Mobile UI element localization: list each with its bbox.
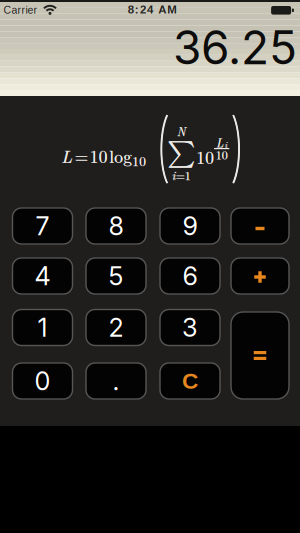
staticText: 10 (216, 146, 228, 163)
staticText: =1 (176, 167, 191, 184)
staticText: 10 (90, 143, 108, 168)
staticText: 7 (35, 211, 49, 241)
button[interactable]: C (160, 363, 220, 399)
button[interactable]: 4 (12, 258, 72, 294)
staticText: log (109, 143, 132, 168)
staticText: L (216, 134, 224, 151)
staticText: 8 (108, 211, 123, 241)
staticText: 10 (132, 151, 146, 170)
staticText: 10 (132, 151, 146, 170)
staticText: i (172, 167, 176, 184)
staticText: L (61, 143, 72, 168)
staticText: L (216, 134, 224, 151)
staticText: = (75, 143, 88, 168)
button[interactable]: 6 (160, 258, 220, 294)
staticText: ∑ (167, 140, 195, 167)
staticText: 5 (108, 261, 123, 291)
staticText: 2 (108, 312, 123, 343)
staticText: 6 (182, 261, 197, 291)
button[interactable]: 8 (86, 208, 146, 244)
staticText: N (177, 123, 186, 140)
staticText: i (171, 166, 175, 183)
staticText: 10 (89, 143, 107, 168)
button[interactable]: 5 (86, 258, 146, 294)
staticText: 4 (34, 261, 50, 291)
staticText: 10 (215, 146, 227, 163)
staticText: ∑ (167, 140, 195, 166)
button[interactable] (231, 312, 289, 399)
staticText: =1 (175, 166, 190, 183)
button[interactable] (231, 208, 289, 244)
staticText: 0 (34, 366, 50, 396)
staticText: 10 (196, 144, 214, 169)
button[interactable]: 2 (86, 309, 146, 345)
staticText: 8:24 AM (128, 3, 177, 16)
button[interactable]: 0 (12, 363, 72, 399)
staticText: i (224, 138, 227, 150)
staticText: 9 (182, 211, 197, 241)
staticText: 3 (182, 312, 198, 343)
staticText: L (61, 143, 72, 168)
staticText: = (74, 143, 87, 168)
button[interactable] (231, 258, 289, 294)
staticText: C (182, 368, 198, 394)
staticText: 10 (196, 144, 214, 169)
staticText: Carrier (3, 4, 37, 16)
button[interactable]: 7 (12, 208, 72, 244)
staticText: N (176, 122, 185, 139)
button[interactable]: 9 (160, 208, 220, 244)
button[interactable]: . (86, 363, 146, 399)
staticText: i (225, 138, 228, 151)
button[interactable]: 1 (12, 309, 72, 345)
staticText: 1 (37, 312, 47, 343)
staticText: . (112, 366, 119, 396)
button[interactable]: 3 (160, 309, 220, 345)
staticText: 36.25 (173, 20, 297, 75)
staticText: log (109, 143, 132, 168)
